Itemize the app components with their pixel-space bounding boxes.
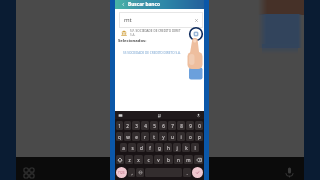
button[interactable]: b xyxy=(164,155,173,164)
button[interactable]: l xyxy=(191,143,199,152)
staticText: f xyxy=(149,145,151,151)
button[interactable]: n xyxy=(174,155,183,164)
button[interactable]: 2 xyxy=(124,121,131,130)
button[interactable]: Enter xyxy=(192,167,203,178)
button[interactable]: r xyxy=(141,132,149,141)
button[interactable]: ?123 xyxy=(116,167,127,178)
staticText: q xyxy=(118,134,121,140)
button[interactable]: S.F. SOCIEDADE DE CREDITO DIRET xyxy=(121,28,201,38)
button[interactable]: w xyxy=(124,132,131,141)
button[interactable] xyxy=(194,155,203,164)
staticText: 7 xyxy=(171,123,174,129)
button[interactable]: h xyxy=(164,143,172,152)
staticText: 6 xyxy=(162,123,165,129)
button[interactable] xyxy=(136,168,144,177)
button[interactable]: Keyboard tool xyxy=(118,113,123,118)
button[interactable]: m xyxy=(184,155,193,164)
staticText: 8 xyxy=(180,123,183,129)
button[interactable]: a xyxy=(120,143,127,152)
button[interactable]: Apps xyxy=(21,165,37,180)
staticText: Buscar banco xyxy=(128,1,160,8)
staticText: d xyxy=(140,145,143,151)
button[interactable]: Select bank xyxy=(188,26,204,42)
staticText: b xyxy=(167,157,170,163)
staticText: 4 xyxy=(144,123,147,129)
button[interactable]: 5 xyxy=(150,121,158,130)
staticText: SS SOCIEDADE DE CREDITO DIRETO S.A. xyxy=(123,51,181,55)
button[interactable]: 7 xyxy=(168,121,176,130)
button[interactable]: , xyxy=(128,168,135,177)
button[interactable]: 8 xyxy=(177,121,185,130)
button[interactable]: i xyxy=(177,132,185,141)
staticText: m xyxy=(186,157,191,163)
staticText: 9 xyxy=(189,123,192,129)
button[interactable]: y xyxy=(159,132,167,141)
staticText: 0 xyxy=(198,123,201,129)
button[interactable]: t xyxy=(150,132,158,141)
button[interactable]: s xyxy=(128,143,136,152)
button[interactable]: 6 xyxy=(159,121,167,130)
button[interactable]: j xyxy=(173,143,181,152)
button[interactable]: Back xyxy=(121,2,126,7)
button[interactable]: q xyxy=(116,132,123,141)
button[interactable]: Clear xyxy=(194,18,199,23)
button[interactable]: g xyxy=(155,143,163,152)
staticText: mt xyxy=(124,16,132,24)
staticText: 1 xyxy=(118,123,121,129)
staticText: 5 xyxy=(153,123,156,129)
button[interactable]: p xyxy=(195,132,203,141)
staticText: i xyxy=(180,134,182,140)
staticText: , xyxy=(131,170,133,176)
staticText: v xyxy=(157,157,160,163)
button[interactable]: Microphone xyxy=(281,164,297,180)
staticText: e xyxy=(135,134,138,140)
staticText: t xyxy=(153,134,155,140)
staticText: p xyxy=(198,134,201,140)
button[interactable]: f xyxy=(146,143,154,152)
staticText: 2 xyxy=(126,123,129,129)
staticText: z xyxy=(128,157,131,163)
button[interactable]: d xyxy=(137,143,145,152)
button[interactable]: Keyboard tool xyxy=(157,113,162,118)
staticText: a xyxy=(122,145,125,151)
button[interactable]: c xyxy=(144,155,153,164)
staticText: k xyxy=(185,145,188,151)
staticText: l xyxy=(194,145,196,151)
staticText: r xyxy=(144,134,146,140)
button[interactable]: e xyxy=(132,132,140,141)
staticText: . xyxy=(186,170,188,176)
button[interactable]: 9 xyxy=(186,121,194,130)
staticText: Selecionados: xyxy=(118,38,147,44)
button[interactable] xyxy=(116,155,124,164)
button[interactable]: k xyxy=(182,143,190,152)
staticText: w xyxy=(126,134,130,140)
button[interactable]: z xyxy=(125,155,133,164)
button[interactable]: o xyxy=(186,132,194,141)
button[interactable]: 3 xyxy=(132,121,140,130)
staticText: o xyxy=(189,134,192,140)
staticText: 3 xyxy=(135,123,138,129)
staticText: n xyxy=(177,157,180,163)
button[interactable]: 1 xyxy=(116,121,123,130)
button[interactable]: u xyxy=(168,132,176,141)
button[interactable]: v xyxy=(154,155,163,164)
button[interactable]: . xyxy=(183,168,191,177)
staticText: c xyxy=(147,157,150,163)
staticText: g xyxy=(158,145,161,151)
staticText: y xyxy=(162,134,165,140)
staticText: S.F. SOCIEDADE DE CREDITO DIRET xyxy=(130,29,181,33)
staticText: S.A. xyxy=(130,33,136,37)
button[interactable]: 0 xyxy=(195,121,203,130)
button[interactable]: 4 xyxy=(141,121,149,130)
staticText: h xyxy=(167,145,170,151)
staticText: x xyxy=(137,157,140,163)
button[interactable]: x xyxy=(134,155,143,164)
button[interactable]: Keyboard tool xyxy=(196,113,201,118)
staticText: ?123 xyxy=(118,171,125,175)
button[interactable]: mt xyxy=(119,12,203,28)
staticText: j xyxy=(176,145,178,151)
staticText: s xyxy=(131,145,134,151)
staticText: u xyxy=(171,134,174,140)
